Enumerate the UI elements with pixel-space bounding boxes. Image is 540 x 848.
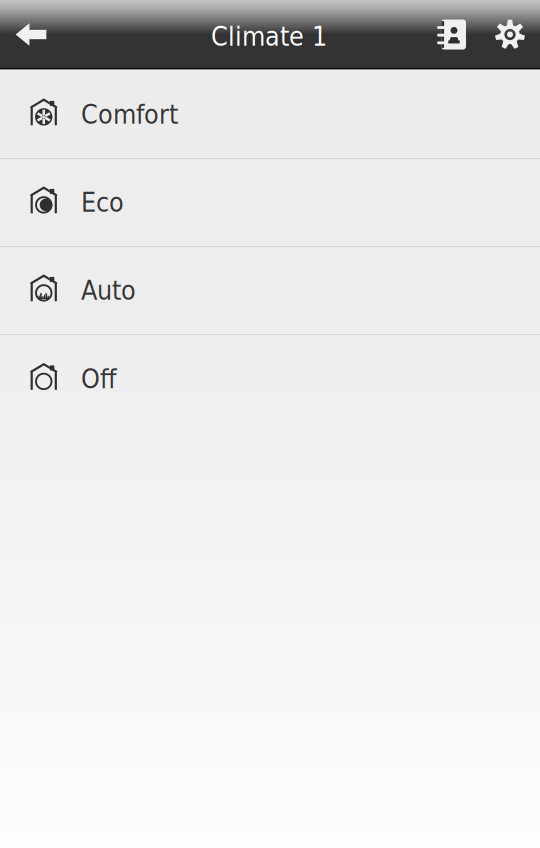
button[interactable]: Auto <box>0 247 540 335</box>
button[interactable]: Comfort <box>0 71 540 159</box>
button[interactable]: Eco <box>0 159 540 247</box>
button[interactable]: Contacts <box>422 0 480 68</box>
button[interactable]: Back <box>0 0 62 68</box>
staticText: Comfort <box>81 99 178 130</box>
staticText: Auto <box>81 275 136 306</box>
button[interactable]: Settings <box>480 0 540 68</box>
button[interactable]: Off <box>0 335 540 423</box>
staticText: Climate 1 <box>211 21 327 52</box>
staticText: Off <box>81 363 117 394</box>
staticText: Eco <box>81 187 124 218</box>
